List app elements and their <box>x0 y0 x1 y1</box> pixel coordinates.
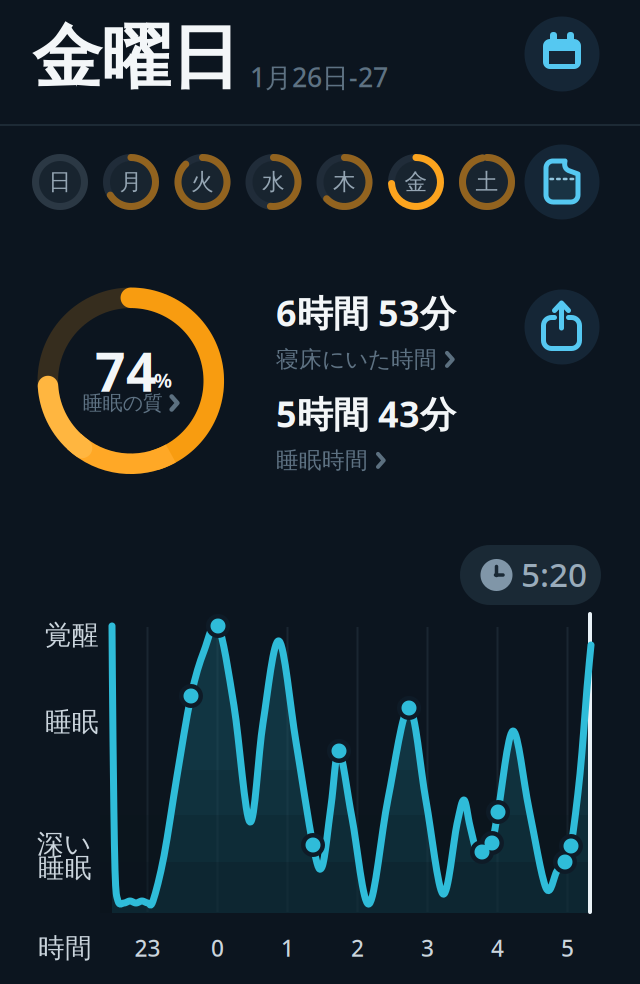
staticText: 睡眠の質 <box>83 391 163 415</box>
staticText: 5:20 <box>521 552 587 596</box>
staticText: 2 <box>351 933 364 963</box>
staticText: 覚醒 <box>45 619 99 651</box>
staticText: 睡眠 <box>38 852 92 884</box>
staticText: 深い <box>37 828 91 860</box>
staticText: 5時間 43分 <box>276 390 456 437</box>
button[interactable]: 木 <box>316 154 372 210</box>
button[interactable]: 5時間 43分 <box>276 390 576 474</box>
staticText: 3 <box>421 933 434 963</box>
staticText: 月 <box>119 168 142 196</box>
button[interactable]: 土 <box>459 154 515 210</box>
button[interactable]: 金 <box>388 154 444 210</box>
staticText: 23 <box>134 933 160 963</box>
staticText: 土 <box>475 168 498 196</box>
staticText: 5 <box>561 933 574 963</box>
staticText: 睡眠時間 <box>276 446 368 474</box>
button[interactable]: カレンダー <box>524 16 599 91</box>
staticText: 水 <box>262 168 285 196</box>
staticText: 1 <box>281 933 294 963</box>
staticText: 6時間 53分 <box>276 289 456 336</box>
staticText: 木 <box>333 168 356 196</box>
button[interactable]: メモ <box>524 144 599 219</box>
staticText: 1月26日-27 <box>250 59 388 95</box>
staticText: 睡眠 <box>45 706 99 738</box>
staticText: 74 <box>95 336 157 406</box>
staticText: 0 <box>211 933 224 963</box>
button[interactable]: 日 <box>32 154 88 210</box>
button[interactable]: 共有 <box>524 289 599 364</box>
staticText: 寝床にいた時間 <box>276 345 437 373</box>
staticText: 火 <box>191 168 214 196</box>
button[interactable]: 水 <box>245 154 301 210</box>
staticText: 金曜日 <box>32 15 239 101</box>
button[interactable]: 6時間 53分 <box>276 289 576 373</box>
staticText: 4 <box>491 933 504 963</box>
button[interactable]: 火 <box>174 154 230 210</box>
staticText: % <box>154 367 172 393</box>
staticText: 金 <box>404 168 427 196</box>
staticText: 日 <box>48 168 71 196</box>
staticText: 時間 <box>38 932 92 964</box>
button[interactable]: 睡眠の質 <box>83 391 181 415</box>
button[interactable]: 月 <box>103 154 159 210</box>
